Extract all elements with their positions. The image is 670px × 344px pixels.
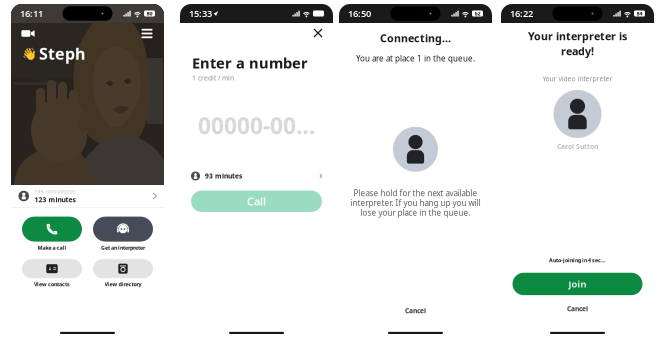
staticText: 16:22 — [510, 7, 533, 20]
staticText: 👋 — [22, 47, 37, 60]
staticText: View contacts — [34, 281, 70, 288]
staticText: Please hold for the next available — [353, 188, 477, 198]
staticText: Enter a number — [192, 53, 308, 72]
button[interactable]: +44 7000 000000 — [11, 185, 164, 207]
staticText: Call — [247, 194, 266, 208]
button[interactable]: Video camera — [19, 28, 37, 39]
button[interactable]: Cancel — [562, 299, 593, 318]
staticText: 93 minutes — [205, 172, 242, 180]
button[interactable]: Close — [310, 25, 326, 41]
staticText: 84 — [636, 10, 642, 17]
staticText: +44 7000 000000 — [34, 188, 75, 195]
staticText: View directory — [104, 281, 141, 288]
staticText: 80 — [146, 10, 152, 17]
staticText: 15:33 — [189, 7, 212, 20]
staticText: 123 minutes — [34, 195, 75, 204]
staticText: Auto-joining in 4 sec… — [549, 257, 606, 264]
staticText: You are at place 1 in the queue. — [356, 53, 475, 64]
staticText: Your interpreter is — [528, 29, 627, 43]
staticText: lose your place in the queue. — [360, 207, 470, 218]
button[interactable]: View directory — [93, 259, 153, 278]
staticText: Connecting… — [380, 31, 451, 45]
staticText: Steph — [39, 43, 85, 64]
button[interactable]: View contacts — [22, 259, 82, 278]
staticText: Carol Sutton — [557, 142, 598, 151]
staticText: Cancel — [405, 306, 426, 315]
button[interactable]: Menu — [138, 28, 156, 39]
staticText: 16:50 — [348, 7, 371, 20]
staticText: Get an interpreter — [101, 244, 145, 251]
button[interactable]: Cancel — [399, 300, 432, 321]
staticText: Your video interpreter — [542, 74, 612, 83]
button[interactable]: Make a call — [22, 217, 82, 242]
button[interactable]: 93 minutes — [191, 169, 322, 182]
staticText: 1 credit / min — [192, 73, 234, 82]
staticText: Join — [568, 278, 586, 290]
staticText: ready! — [561, 44, 594, 58]
staticText: 62 — [474, 10, 480, 17]
button[interactable]: Join — [501, 273, 654, 295]
button[interactable]: Get an interpreter — [93, 217, 153, 242]
button[interactable]: Call — [191, 190, 322, 212]
staticText: 00000-00… — [198, 110, 315, 140]
staticText: 16:11 — [20, 7, 43, 20]
staticText: interpreter. If you hang up you will — [350, 197, 480, 208]
staticText: Cancel — [567, 304, 588, 313]
staticText: Make a call — [37, 244, 66, 251]
